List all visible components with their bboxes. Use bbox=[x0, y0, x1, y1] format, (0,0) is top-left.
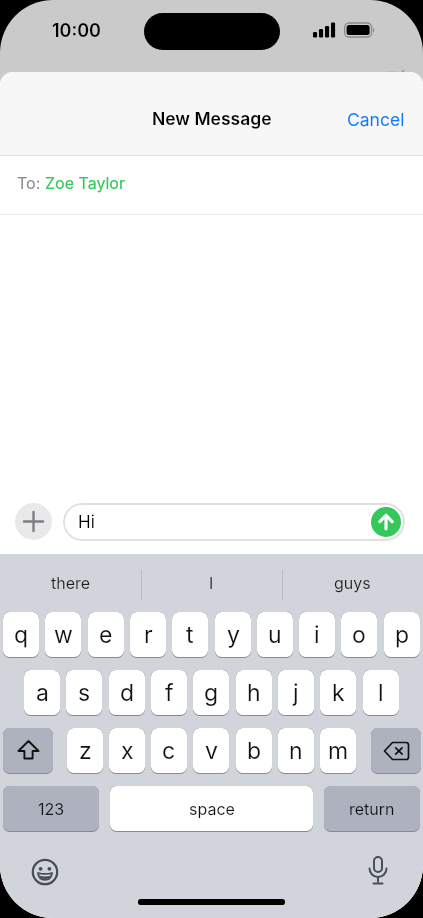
button[interactable]: d bbox=[109, 670, 145, 716]
staticText: j bbox=[293, 679, 299, 707]
staticText: I bbox=[209, 573, 214, 592]
staticText: 10:00 bbox=[52, 20, 101, 42]
button[interactable]: b bbox=[236, 728, 272, 774]
button[interactable]: v bbox=[193, 728, 229, 774]
staticText: Hi bbox=[78, 512, 95, 533]
staticText: guys bbox=[334, 573, 371, 592]
button[interactable] bbox=[29, 856, 61, 888]
button[interactable] bbox=[371, 507, 401, 537]
staticText: b bbox=[247, 737, 262, 765]
button[interactable]: 123 bbox=[3, 786, 99, 832]
staticText: i bbox=[314, 621, 320, 649]
staticText: g bbox=[204, 679, 219, 707]
staticText: there bbox=[51, 573, 91, 592]
button[interactable]: To: bbox=[0, 156, 423, 215]
staticText: 123 bbox=[38, 799, 65, 818]
staticText: return bbox=[349, 799, 395, 818]
button[interactable]: a bbox=[24, 670, 60, 716]
staticText: w bbox=[54, 621, 73, 649]
button[interactable]: w bbox=[45, 612, 81, 658]
staticText: Zoe Taylor bbox=[45, 173, 125, 192]
button[interactable]: e bbox=[88, 612, 124, 658]
button[interactable]: o bbox=[341, 612, 377, 658]
staticText: To: bbox=[17, 173, 45, 192]
staticText: Cancel bbox=[347, 109, 405, 130]
staticText: s bbox=[78, 679, 91, 707]
button[interactable] bbox=[15, 503, 52, 540]
staticText: q bbox=[14, 621, 29, 649]
button[interactable]: l bbox=[363, 670, 399, 716]
staticText: z bbox=[79, 737, 92, 765]
button[interactable]: x bbox=[109, 728, 145, 774]
staticText: f bbox=[165, 679, 174, 707]
button[interactable]: Cancel bbox=[300, 94, 405, 144]
button[interactable]: there bbox=[0, 556, 141, 608]
staticText: a bbox=[36, 679, 49, 707]
button[interactable]: n bbox=[278, 728, 314, 774]
button[interactable]: u bbox=[257, 612, 293, 658]
staticText: t bbox=[186, 621, 194, 649]
staticText: u bbox=[268, 621, 282, 649]
staticText: l bbox=[378, 679, 384, 707]
staticText: v bbox=[205, 737, 218, 765]
staticText: c bbox=[162, 737, 176, 765]
button[interactable]: k bbox=[320, 670, 356, 716]
staticText: d bbox=[120, 679, 135, 707]
button[interactable]: t bbox=[172, 612, 208, 658]
button[interactable]: s bbox=[66, 670, 102, 716]
button[interactable]: i bbox=[299, 612, 335, 658]
button[interactable] bbox=[3, 728, 53, 774]
button[interactable]: g bbox=[193, 670, 229, 716]
button[interactable]: y bbox=[215, 612, 251, 658]
staticText: e bbox=[99, 621, 113, 649]
button[interactable]: return bbox=[324, 786, 420, 832]
staticText: m bbox=[328, 737, 349, 765]
button[interactable]: Hi bbox=[63, 503, 405, 541]
button[interactable]: r bbox=[130, 612, 166, 658]
button[interactable]: p bbox=[384, 612, 420, 658]
button[interactable]: I bbox=[141, 556, 282, 608]
staticText: k bbox=[332, 679, 345, 707]
button[interactable]: f bbox=[151, 670, 187, 716]
staticText: o bbox=[352, 621, 366, 649]
button[interactable]: j bbox=[278, 670, 314, 716]
button[interactable]: guys bbox=[282, 556, 423, 608]
staticText: x bbox=[121, 737, 134, 765]
button[interactable] bbox=[362, 854, 394, 890]
staticText: New Message bbox=[152, 108, 272, 129]
button[interactable]: h bbox=[236, 670, 272, 716]
button[interactable]: space bbox=[110, 786, 313, 832]
staticText: n bbox=[289, 737, 303, 765]
staticText: p bbox=[395, 621, 410, 649]
button[interactable]: z bbox=[67, 728, 103, 774]
staticText: y bbox=[227, 621, 240, 649]
staticText: h bbox=[247, 679, 261, 707]
staticText: r bbox=[144, 621, 153, 649]
button[interactable]: c bbox=[151, 728, 187, 774]
staticText: space bbox=[189, 799, 235, 818]
button[interactable]: m bbox=[320, 728, 356, 774]
button[interactable] bbox=[371, 728, 421, 774]
button[interactable]: q bbox=[3, 612, 39, 658]
